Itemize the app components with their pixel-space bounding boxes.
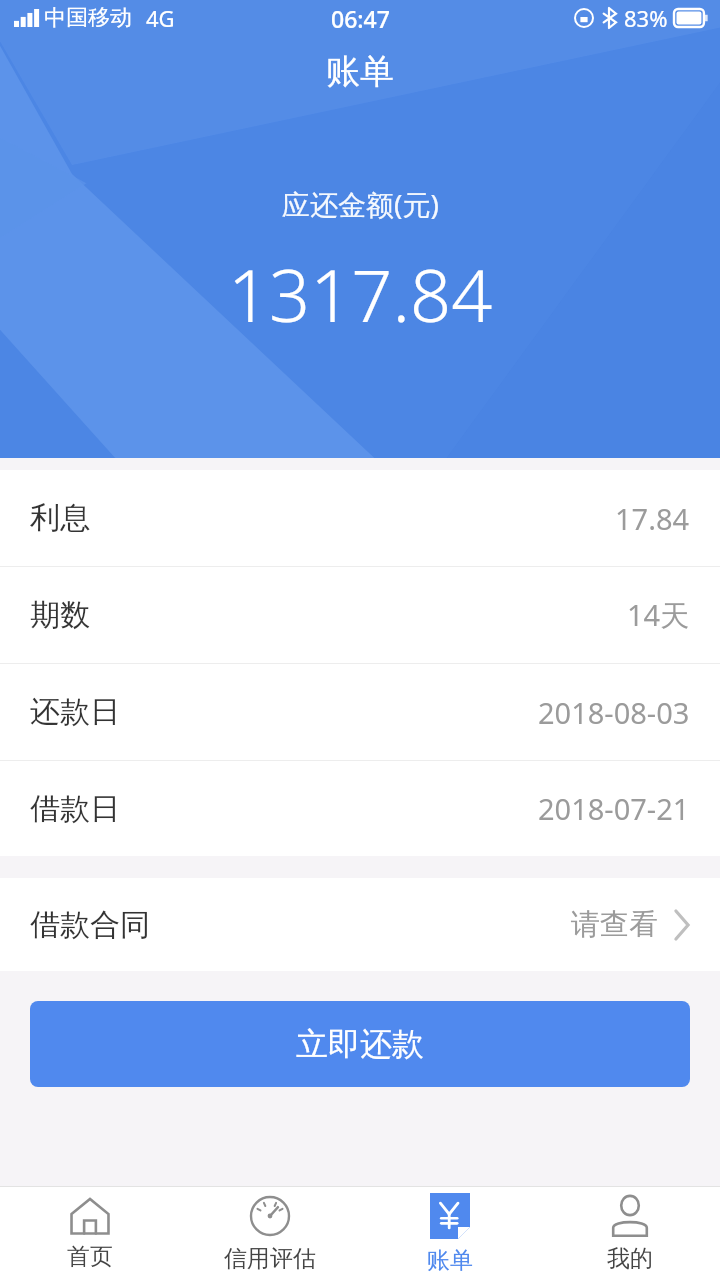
staticText: 83% <box>624 3 668 33</box>
staticText: 4G <box>146 3 175 33</box>
staticText: 信用评估 <box>224 1244 316 1273</box>
button[interactable]: 借款日 <box>0 761 720 856</box>
button[interactable]: 账单 <box>360 1187 540 1280</box>
staticText: 请查看 <box>571 906 658 943</box>
staticText: 立即还款 <box>296 1024 424 1064</box>
staticText: 首页 <box>67 1242 113 1271</box>
staticText: 中国移动 <box>44 4 132 32</box>
staticText: 2018-07-21 <box>538 789 690 828</box>
button[interactable]: 期数 <box>0 567 720 664</box>
staticText: 利息 <box>30 499 90 537</box>
button[interactable]: 立即还款 <box>30 1001 690 1087</box>
staticText: 我的 <box>607 1244 653 1273</box>
staticText: 账单 <box>0 50 720 93</box>
staticText: 期数 <box>30 596 90 634</box>
button[interactable]: 借款合同 <box>0 878 720 971</box>
staticText: 1317.84 <box>228 245 493 343</box>
staticText: 账单 <box>427 1246 473 1275</box>
staticText: 14天 <box>627 595 690 635</box>
button[interactable]: 利息 <box>0 470 720 567</box>
button[interactable]: 还款日 <box>0 664 720 761</box>
staticText: 应还金额(元) <box>282 185 439 223</box>
staticText: 借款日 <box>30 790 120 828</box>
staticText: 还款日 <box>30 693 120 731</box>
button[interactable]: 信用评估 <box>180 1187 360 1280</box>
staticText: 06:47 <box>331 3 390 34</box>
other: 账单 <box>430 1193 470 1239</box>
staticText: 借款合同 <box>30 906 150 944</box>
button[interactable]: 首页 <box>0 1187 180 1280</box>
staticText: 17.84 <box>615 499 690 538</box>
button[interactable]: 我的 <box>540 1187 720 1280</box>
staticText: 2018-08-03 <box>538 693 690 732</box>
